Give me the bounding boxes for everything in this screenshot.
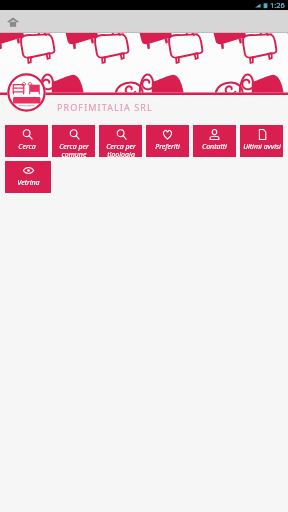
button[interactable]: Cerca: [5, 125, 48, 157]
button[interactable]: Contatti: [193, 125, 236, 157]
button[interactable]: Ultimi avvisi: [240, 125, 283, 157]
staticText: 1:26: [270, 0, 285, 10]
staticText: Ultimi avvisi: [243, 142, 281, 152]
button[interactable]: Vetrina: [5, 161, 51, 193]
button[interactable]: Preferiti: [146, 125, 189, 157]
staticText: PROFIMITALIA SRL: [57, 101, 153, 113]
button[interactable]: Cerca per tipologia: [99, 125, 142, 157]
staticText: Cerca: [18, 142, 36, 152]
button[interactable]: Cerca per comune: [52, 125, 95, 157]
staticText: Cerca per comune: [59, 142, 89, 157]
button[interactable]: Home: [3, 12, 22, 31]
staticText: Contatti: [202, 142, 227, 152]
staticText: Vetrina: [17, 178, 40, 188]
staticText: Preferiti: [155, 142, 180, 152]
staticText: Cerca per tipologia: [106, 142, 136, 157]
